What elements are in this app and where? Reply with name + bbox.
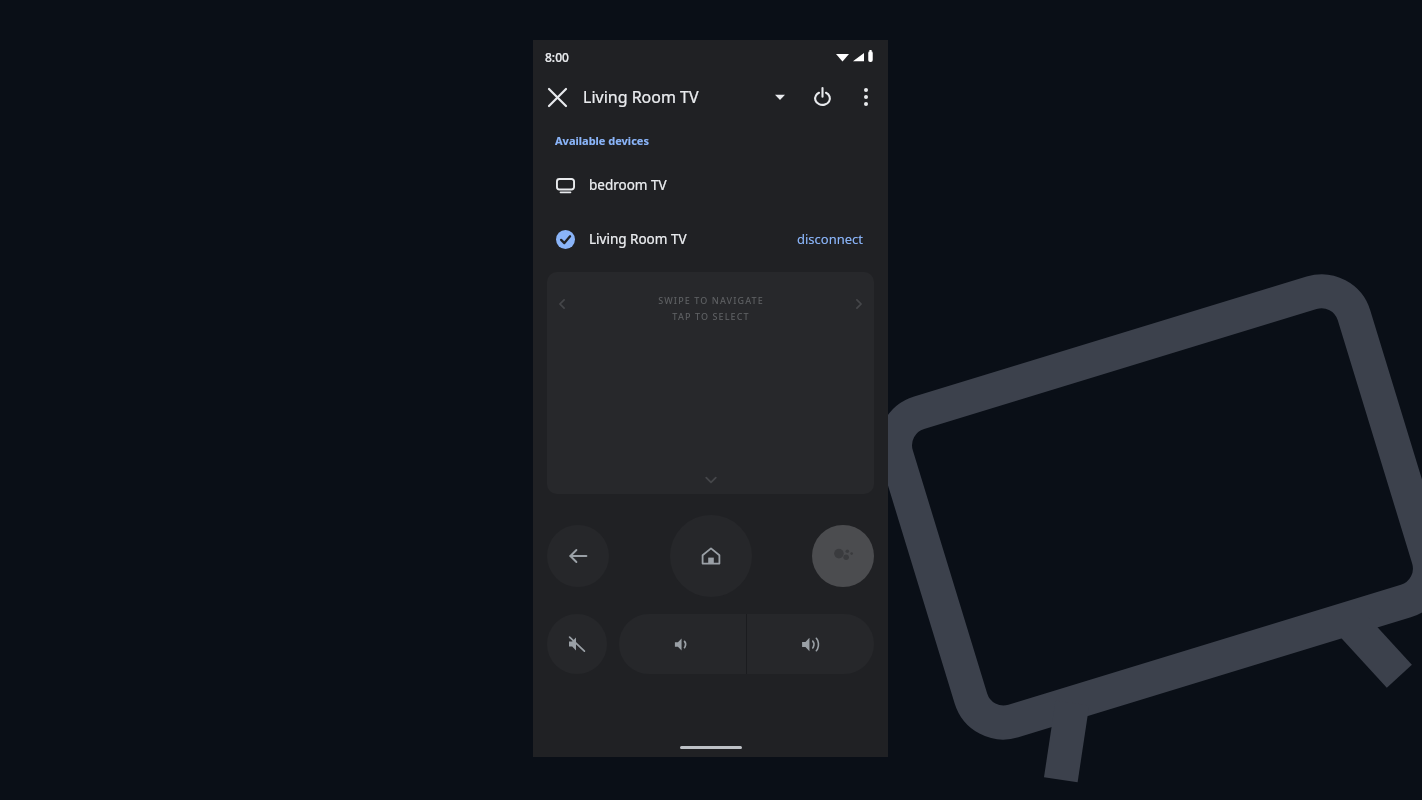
staticText: SWIPE TO NAVIGATE (658, 294, 764, 306)
button[interactable]: Volume up (747, 614, 874, 674)
staticText: Available devices (555, 133, 649, 148)
button[interactable]: bedroom TV (533, 170, 888, 200)
staticText: Living Room TV (589, 230, 687, 248)
button[interactable]: Google Assistant (812, 525, 874, 587)
button[interactable]: Close (533, 73, 581, 121)
staticText: Living Room TV (583, 86, 699, 108)
button[interactable]: Touchpad, swipe to navigate, tap to sele… (547, 272, 874, 494)
staticText: bedroom TV (589, 176, 667, 194)
button[interactable]: Expand device list (760, 77, 800, 117)
staticText: 8:00 (545, 49, 569, 65)
staticText: TAP TO SELECT (672, 310, 750, 322)
button[interactable]: Mute (547, 614, 607, 674)
button[interactable]: Volume down (619, 614, 746, 674)
button[interactable]: More options (844, 75, 888, 119)
button[interactable]: Power (800, 75, 844, 119)
button[interactable]: Back (547, 525, 609, 587)
button[interactable]: Home (670, 515, 752, 597)
staticText: disconnect (797, 230, 864, 248)
button[interactable]: Living Room TV (533, 224, 888, 254)
button[interactable]: disconnect (795, 226, 866, 252)
